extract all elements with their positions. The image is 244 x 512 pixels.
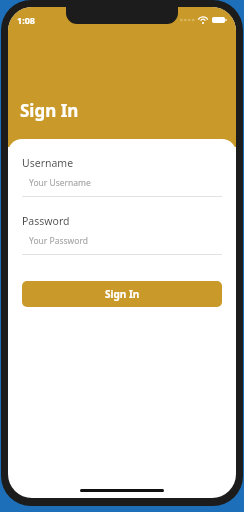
other: Battery [212, 16, 227, 24]
staticText: Username [22, 156, 74, 170]
staticText: Your Password [29, 235, 88, 247]
other: Wi-Fi [198, 16, 208, 24]
button[interactable]: Password [22, 214, 222, 255]
button[interactable]: Username [22, 156, 222, 197]
button[interactable]: Sign In [22, 281, 222, 307]
staticText: Password [22, 214, 70, 228]
staticText: 1:08 [17, 14, 35, 26]
staticText: Sign In [20, 99, 79, 122]
staticText: Sign In [105, 287, 140, 301]
other: Cellular signal [180, 16, 194, 24]
staticText: Your Username [29, 177, 91, 189]
